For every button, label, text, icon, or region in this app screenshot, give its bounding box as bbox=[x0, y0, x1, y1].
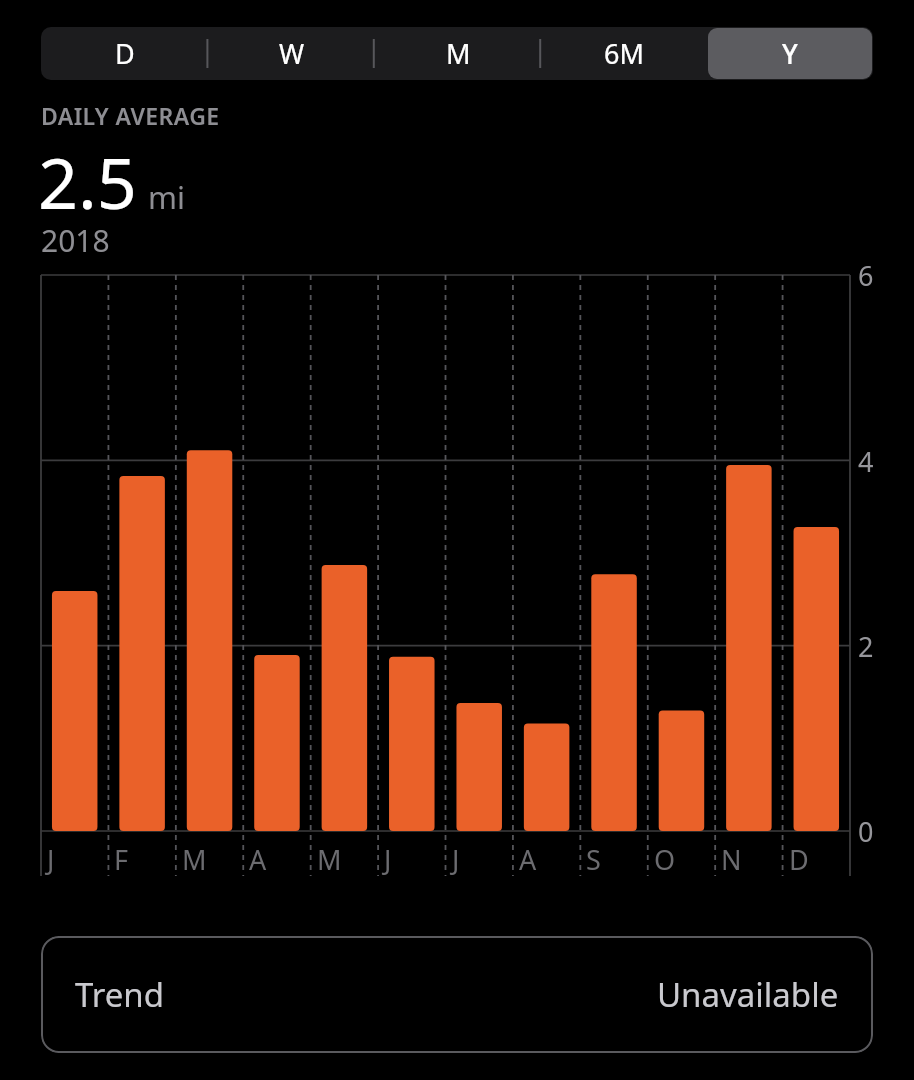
staticText: A bbox=[249, 841, 267, 878]
button[interactable]: 6M bbox=[542, 28, 706, 79]
staticText: M bbox=[317, 841, 342, 878]
button[interactable]: W bbox=[209, 28, 374, 79]
staticText: J bbox=[452, 841, 460, 878]
staticText: J bbox=[47, 841, 55, 878]
staticText: Unavailable bbox=[657, 972, 839, 1017]
staticText: W bbox=[279, 35, 305, 72]
staticText: 6M bbox=[604, 35, 644, 72]
staticText: 0 bbox=[858, 813, 874, 850]
staticText: DAILY AVERAGE bbox=[41, 100, 220, 131]
staticText: J bbox=[384, 841, 392, 878]
button[interactable]: Y bbox=[708, 28, 872, 79]
button[interactable]: M bbox=[376, 28, 540, 79]
staticText: M bbox=[446, 35, 471, 72]
staticText: Trend bbox=[75, 972, 164, 1017]
staticText: 2018 bbox=[41, 220, 110, 261]
staticText: 2 bbox=[858, 628, 874, 665]
staticText: N bbox=[721, 841, 742, 878]
staticText: S bbox=[586, 841, 601, 878]
staticText: 6 bbox=[858, 257, 874, 294]
button[interactable]: Trend bbox=[41, 936, 873, 1053]
staticText: 4 bbox=[858, 443, 874, 480]
staticText: 2.5 bbox=[38, 134, 137, 229]
button[interactable]: D bbox=[42, 28, 207, 79]
staticText: A bbox=[519, 841, 537, 878]
staticText: F bbox=[114, 841, 129, 878]
staticText: M bbox=[182, 841, 207, 878]
staticText: Y bbox=[782, 35, 798, 72]
staticText: D bbox=[789, 841, 809, 878]
staticText: mi bbox=[148, 176, 185, 218]
staticText: O bbox=[654, 841, 676, 878]
staticText: D bbox=[115, 35, 135, 72]
